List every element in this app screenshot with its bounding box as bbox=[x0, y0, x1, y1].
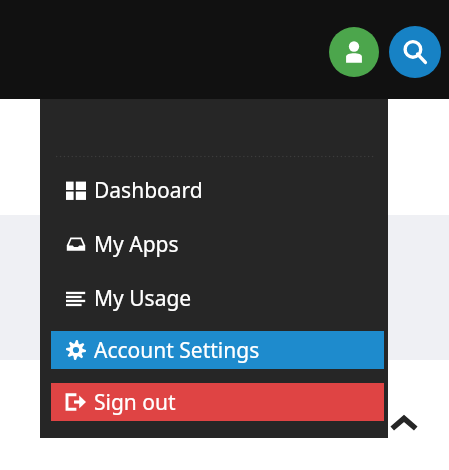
staticText: My Apps bbox=[94, 230, 179, 259]
button[interactable]: Sign out bbox=[51, 383, 384, 421]
staticText: Dashboard bbox=[94, 176, 203, 205]
button[interactable]: Account Settings bbox=[51, 331, 384, 369]
staticText: My Usage bbox=[94, 284, 192, 313]
button[interactable]: Account bbox=[329, 27, 379, 77]
button[interactable]: My Apps bbox=[51, 225, 384, 263]
staticText: Sign out bbox=[94, 388, 176, 417]
button[interactable]: Dashboard bbox=[51, 171, 384, 209]
button[interactable]: Scroll to top bbox=[386, 406, 422, 442]
staticText: Account Settings bbox=[94, 336, 260, 365]
button[interactable]: My Usage bbox=[51, 279, 384, 317]
button[interactable]: Search bbox=[389, 26, 441, 78]
